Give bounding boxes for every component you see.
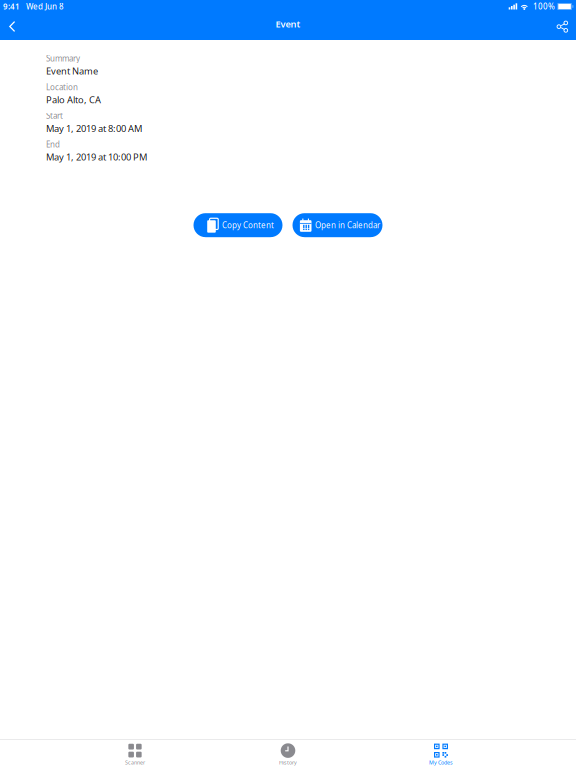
staticText: Event bbox=[275, 18, 300, 30]
button[interactable]: History bbox=[228, 739, 348, 768]
button[interactable]: Open in Calendar bbox=[292, 213, 382, 237]
staticText: My Codes bbox=[429, 759, 453, 766]
staticText: 9:41 bbox=[3, 1, 20, 12]
staticText: Wed Jun 8 bbox=[26, 1, 64, 12]
staticText: Palo Alto, CA bbox=[46, 93, 101, 106]
staticText: Start bbox=[46, 110, 63, 121]
button[interactable]: My Codes bbox=[381, 739, 501, 768]
button[interactable]: Copy Content bbox=[193, 213, 282, 237]
staticText: Scanner bbox=[125, 759, 145, 766]
staticText: End bbox=[46, 139, 60, 150]
staticText: Event Name bbox=[46, 65, 98, 77]
staticText: 100% bbox=[533, 1, 555, 12]
button[interactable]: Share bbox=[548, 13, 576, 40]
staticText: Summary bbox=[46, 53, 80, 64]
button[interactable]: Back bbox=[0, 13, 24, 40]
button[interactable]: Scanner bbox=[75, 739, 195, 768]
staticText: History bbox=[279, 759, 297, 766]
staticText: Open in Calendar bbox=[315, 220, 380, 230]
staticText: May 1, 2019 at 8:00 AM bbox=[46, 122, 142, 134]
staticText: May 1, 2019 at 10:00 PM bbox=[46, 151, 147, 163]
staticText: Location bbox=[46, 82, 78, 92]
staticText: Copy Content bbox=[222, 220, 274, 230]
